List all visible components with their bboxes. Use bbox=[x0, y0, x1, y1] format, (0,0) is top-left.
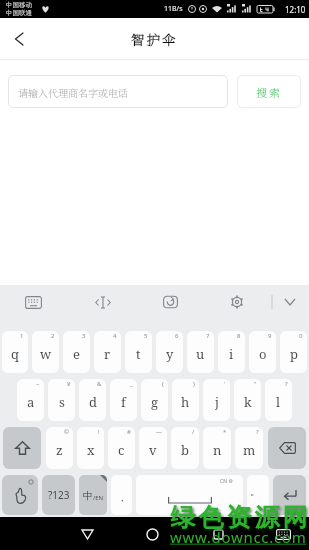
staticText: q bbox=[11, 345, 19, 363]
button[interactable]: * bbox=[203, 427, 231, 469]
button[interactable]: ) bbox=[172, 379, 199, 421]
button[interactable] bbox=[25, 296, 42, 309]
staticText: ) bbox=[193, 380, 195, 388]
button[interactable] bbox=[284, 298, 296, 306]
button[interactable]: 0 bbox=[280, 331, 307, 373]
staticText: 。 bbox=[250, 485, 260, 498]
staticText: y bbox=[166, 345, 174, 363]
staticText: s bbox=[59, 393, 65, 411]
button[interactable]: — bbox=[139, 427, 167, 469]
button[interactable]: 6 bbox=[156, 331, 183, 373]
staticText: o bbox=[259, 345, 267, 363]
staticText: b bbox=[181, 441, 189, 459]
button[interactable]: ' bbox=[203, 379, 230, 421]
button[interactable] bbox=[163, 295, 178, 309]
staticText: n bbox=[213, 441, 222, 459]
staticText: g bbox=[151, 393, 158, 411]
button[interactable] bbox=[3, 427, 41, 469]
button[interactable]: 8 bbox=[218, 331, 245, 373]
button[interactable]: 1 bbox=[2, 331, 28, 373]
staticText: ， bbox=[117, 491, 127, 504]
button[interactable] bbox=[268, 427, 306, 469]
button[interactable] bbox=[230, 295, 244, 309]
button[interactable]: ? bbox=[265, 379, 292, 421]
button[interactable]: 4 bbox=[94, 331, 121, 373]
button[interactable] bbox=[139, 521, 165, 547]
button[interactable] bbox=[2, 475, 38, 515]
staticText: 6 bbox=[175, 332, 179, 340]
staticText: 4 bbox=[113, 332, 117, 340]
staticText: # bbox=[127, 428, 131, 436]
staticText: m bbox=[243, 441, 256, 459]
button[interactable]: ¥ bbox=[48, 379, 75, 421]
staticText: 中国联通 bbox=[6, 9, 32, 17]
button[interactable]: 请输入代理商名字或电话 bbox=[8, 75, 228, 108]
staticText: * bbox=[223, 428, 227, 436]
staticText: " bbox=[254, 380, 257, 388]
button[interactable] bbox=[74, 521, 100, 547]
button[interactable]: 9 bbox=[249, 331, 276, 373]
staticText: u bbox=[196, 345, 205, 363]
button[interactable]: ?123 bbox=[42, 475, 75, 515]
button[interactable]: _ bbox=[110, 379, 137, 421]
staticText: i bbox=[229, 345, 234, 363]
staticText: ( bbox=[162, 380, 164, 388]
staticText: x bbox=[87, 441, 95, 459]
button[interactable]: " bbox=[234, 379, 261, 421]
staticText: 2 bbox=[51, 332, 55, 340]
staticText: 12:10 bbox=[285, 4, 306, 15]
staticText: h bbox=[181, 393, 190, 411]
staticText: 5 bbox=[144, 332, 148, 340]
button[interactable] bbox=[95, 296, 111, 309]
staticText: t bbox=[136, 345, 141, 363]
staticText: /EN bbox=[93, 494, 104, 502]
button[interactable] bbox=[273, 475, 306, 515]
button[interactable] bbox=[6, 26, 32, 52]
staticText: ! bbox=[98, 428, 100, 436]
button[interactable]: 搜索 bbox=[237, 75, 301, 108]
staticText: 中 bbox=[83, 489, 93, 502]
staticText: 智护伞 bbox=[131, 29, 178, 48]
staticText: 搜索 bbox=[256, 84, 282, 100]
button[interactable]: ( bbox=[141, 379, 168, 421]
button[interactable]: 。 bbox=[247, 475, 269, 515]
staticText: ' bbox=[224, 380, 226, 388]
staticText: v bbox=[149, 441, 157, 459]
staticText: ? bbox=[285, 380, 288, 388]
button[interactable]: ， bbox=[111, 475, 132, 515]
button[interactable]: 2 bbox=[32, 331, 59, 373]
staticText: a bbox=[27, 393, 35, 411]
staticText: & bbox=[97, 380, 102, 388]
staticText: www.downcc.com bbox=[170, 527, 307, 547]
button[interactable] bbox=[270, 521, 296, 547]
button[interactable]: 3 bbox=[63, 331, 90, 373]
staticText: w bbox=[40, 345, 52, 363]
staticText: l bbox=[276, 393, 281, 411]
button[interactable]: ? bbox=[235, 427, 263, 469]
staticText: r bbox=[104, 345, 111, 363]
staticText: k bbox=[244, 393, 252, 411]
staticText: d bbox=[89, 393, 97, 411]
button[interactable]: & bbox=[79, 379, 106, 421]
button[interactable]: CN ⚙ bbox=[136, 475, 243, 515]
button[interactable]: ~ bbox=[17, 379, 44, 421]
staticText: p bbox=[290, 345, 298, 363]
button[interactable]: © bbox=[46, 427, 73, 469]
staticText: ?123 bbox=[48, 488, 70, 502]
staticText: 7 bbox=[206, 332, 210, 340]
button[interactable]: / bbox=[171, 427, 199, 469]
button[interactable]: 中 bbox=[79, 475, 107, 515]
staticText: 中国移动 bbox=[6, 1, 32, 9]
staticText: f bbox=[121, 393, 126, 411]
staticText: _ bbox=[130, 380, 133, 388]
button[interactable] bbox=[205, 521, 231, 547]
button[interactable]: ! bbox=[77, 427, 104, 469]
staticText: ~ bbox=[36, 380, 40, 388]
button[interactable]: 5 bbox=[125, 331, 152, 373]
staticText: — bbox=[156, 428, 163, 436]
staticText: 9 bbox=[268, 332, 272, 340]
staticText: 0 bbox=[299, 332, 303, 340]
staticText: ? bbox=[256, 428, 259, 436]
button[interactable]: 7 bbox=[187, 331, 214, 373]
button[interactable]: # bbox=[108, 427, 135, 469]
